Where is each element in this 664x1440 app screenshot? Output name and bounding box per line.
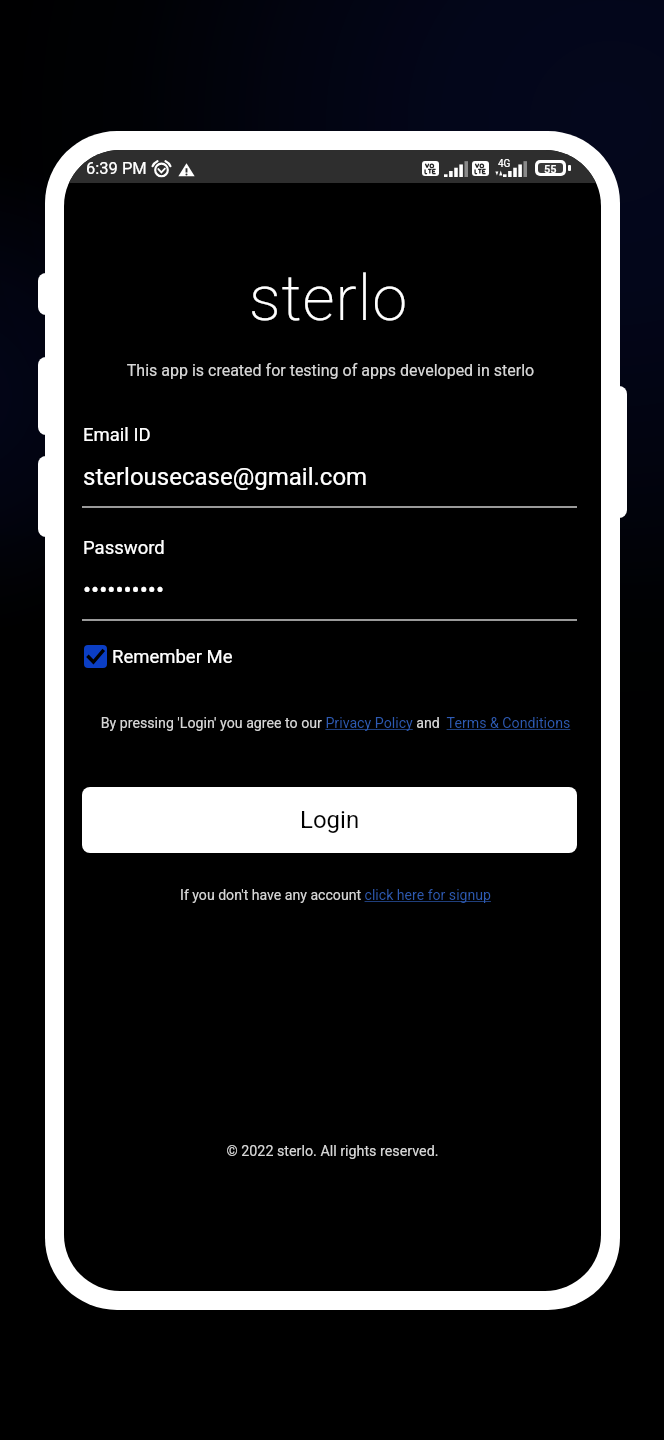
staticText: sterlo <box>64 262 597 336</box>
staticText: 55 <box>544 163 557 173</box>
staticText: This app is created for testing of apps … <box>64 361 599 380</box>
staticText: •••••••••• <box>83 576 164 604</box>
staticText: By pressing 'Login' you agree to our Pri… <box>67 715 601 732</box>
button[interactable]: Remember Me <box>84 645 243 668</box>
staticText: 4G <box>498 158 511 170</box>
staticText: sterlousecase@gmail.com <box>83 463 368 491</box>
staticText: Remember Me <box>112 646 233 668</box>
staticText: Login <box>300 806 360 834</box>
staticText: Password <box>83 537 165 559</box>
staticText: Email ID <box>83 424 151 446</box>
button[interactable]: Login <box>82 787 577 853</box>
staticText: 6:39 PM <box>86 159 147 178</box>
staticText: © 2022 sterlo. All rights reserved. <box>64 1143 601 1160</box>
button[interactable]: If you don't have any account click here… <box>67 887 601 904</box>
